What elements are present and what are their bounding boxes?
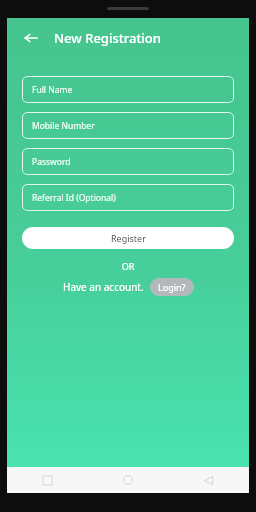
staticText: Referral Id (Optional) xyxy=(32,192,116,204)
button[interactable]: Referral Id (Optional) xyxy=(22,184,234,211)
staticText: Mobile Number xyxy=(32,120,95,132)
staticText: Password xyxy=(32,156,71,168)
button[interactable]: Password xyxy=(22,148,234,175)
button[interactable]: Mobile Number xyxy=(22,112,234,139)
button[interactable]: Recent apps xyxy=(7,467,87,493)
button[interactable]: Register xyxy=(22,227,234,249)
button[interactable]: Back xyxy=(20,27,42,49)
button[interactable]: Full Name xyxy=(22,76,234,103)
button[interactable]: Login? xyxy=(150,278,194,296)
staticText: Have an account. xyxy=(63,280,144,294)
staticText: Full Name xyxy=(32,84,73,96)
staticText: Register xyxy=(111,232,146,244)
staticText: New Registration xyxy=(54,29,161,47)
staticText: Login? xyxy=(158,281,186,293)
staticText: OR xyxy=(7,260,249,272)
